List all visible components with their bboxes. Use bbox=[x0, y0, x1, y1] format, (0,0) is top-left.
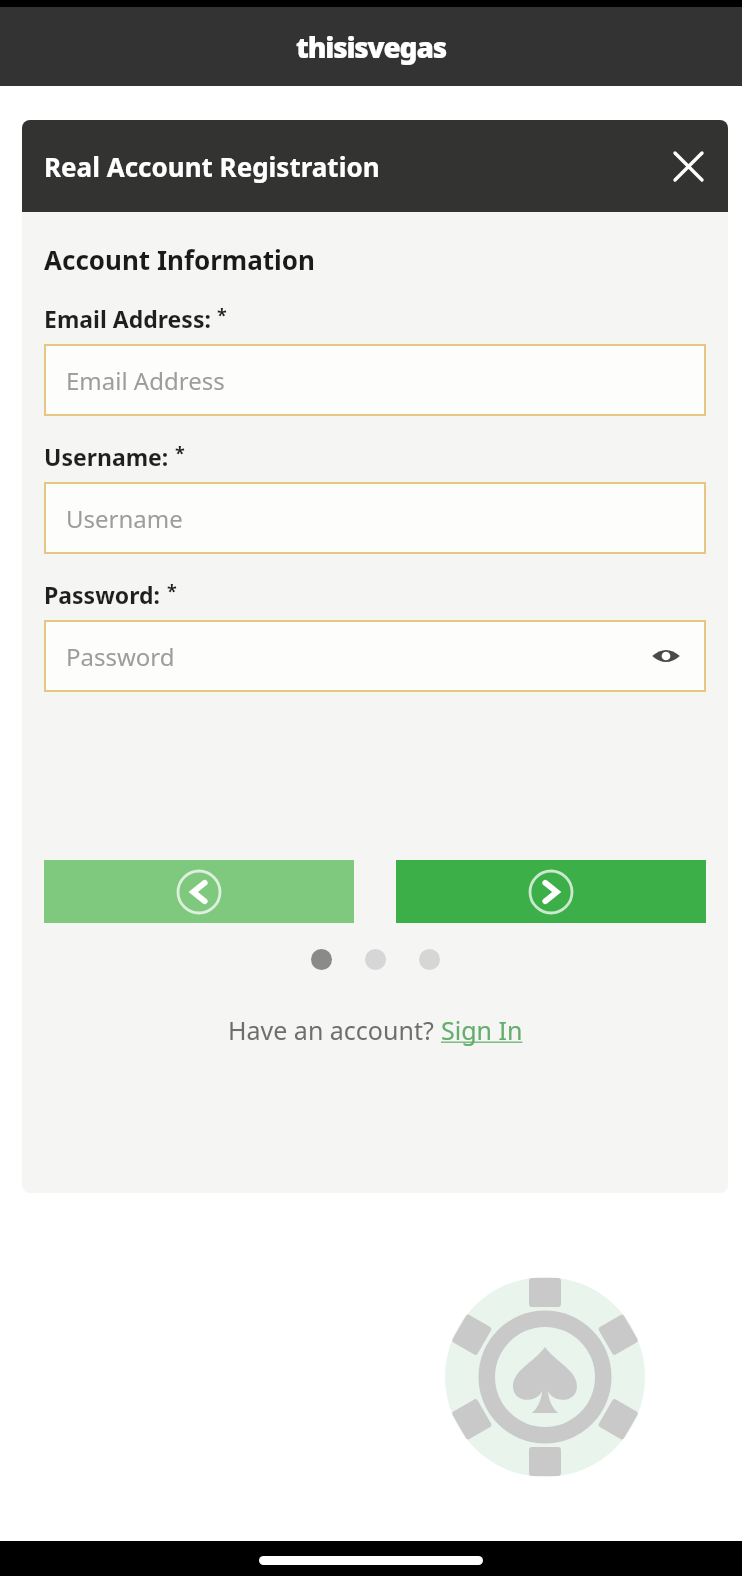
staticText: Sign In bbox=[441, 1013, 523, 1047]
button[interactable]: Previous step bbox=[44, 860, 354, 923]
button[interactable]: Show password bbox=[646, 636, 686, 676]
staticText: * bbox=[167, 579, 177, 604]
button[interactable]: Password bbox=[44, 620, 706, 692]
staticText: * bbox=[217, 303, 227, 328]
button[interactable]: Sign In bbox=[441, 1013, 523, 1047]
staticText: Account Information bbox=[44, 242, 315, 277]
staticText: Username bbox=[66, 502, 183, 535]
button[interactable]: Email Address bbox=[44, 344, 706, 416]
staticText: Username: bbox=[44, 441, 169, 472]
button[interactable]: Username bbox=[44, 482, 706, 554]
staticText: * bbox=[175, 441, 185, 466]
staticText: thisisvegas bbox=[296, 28, 446, 66]
staticText: Password: bbox=[44, 579, 161, 610]
staticText: Email Address: bbox=[44, 303, 211, 334]
staticText: Have an account? bbox=[228, 1013, 441, 1047]
button[interactable]: Close bbox=[660, 138, 716, 194]
staticText: Password bbox=[66, 640, 175, 673]
staticText: Email Address bbox=[66, 364, 225, 397]
staticText: Real Account Registration bbox=[44, 149, 380, 184]
button[interactable]: Next step bbox=[396, 860, 706, 923]
